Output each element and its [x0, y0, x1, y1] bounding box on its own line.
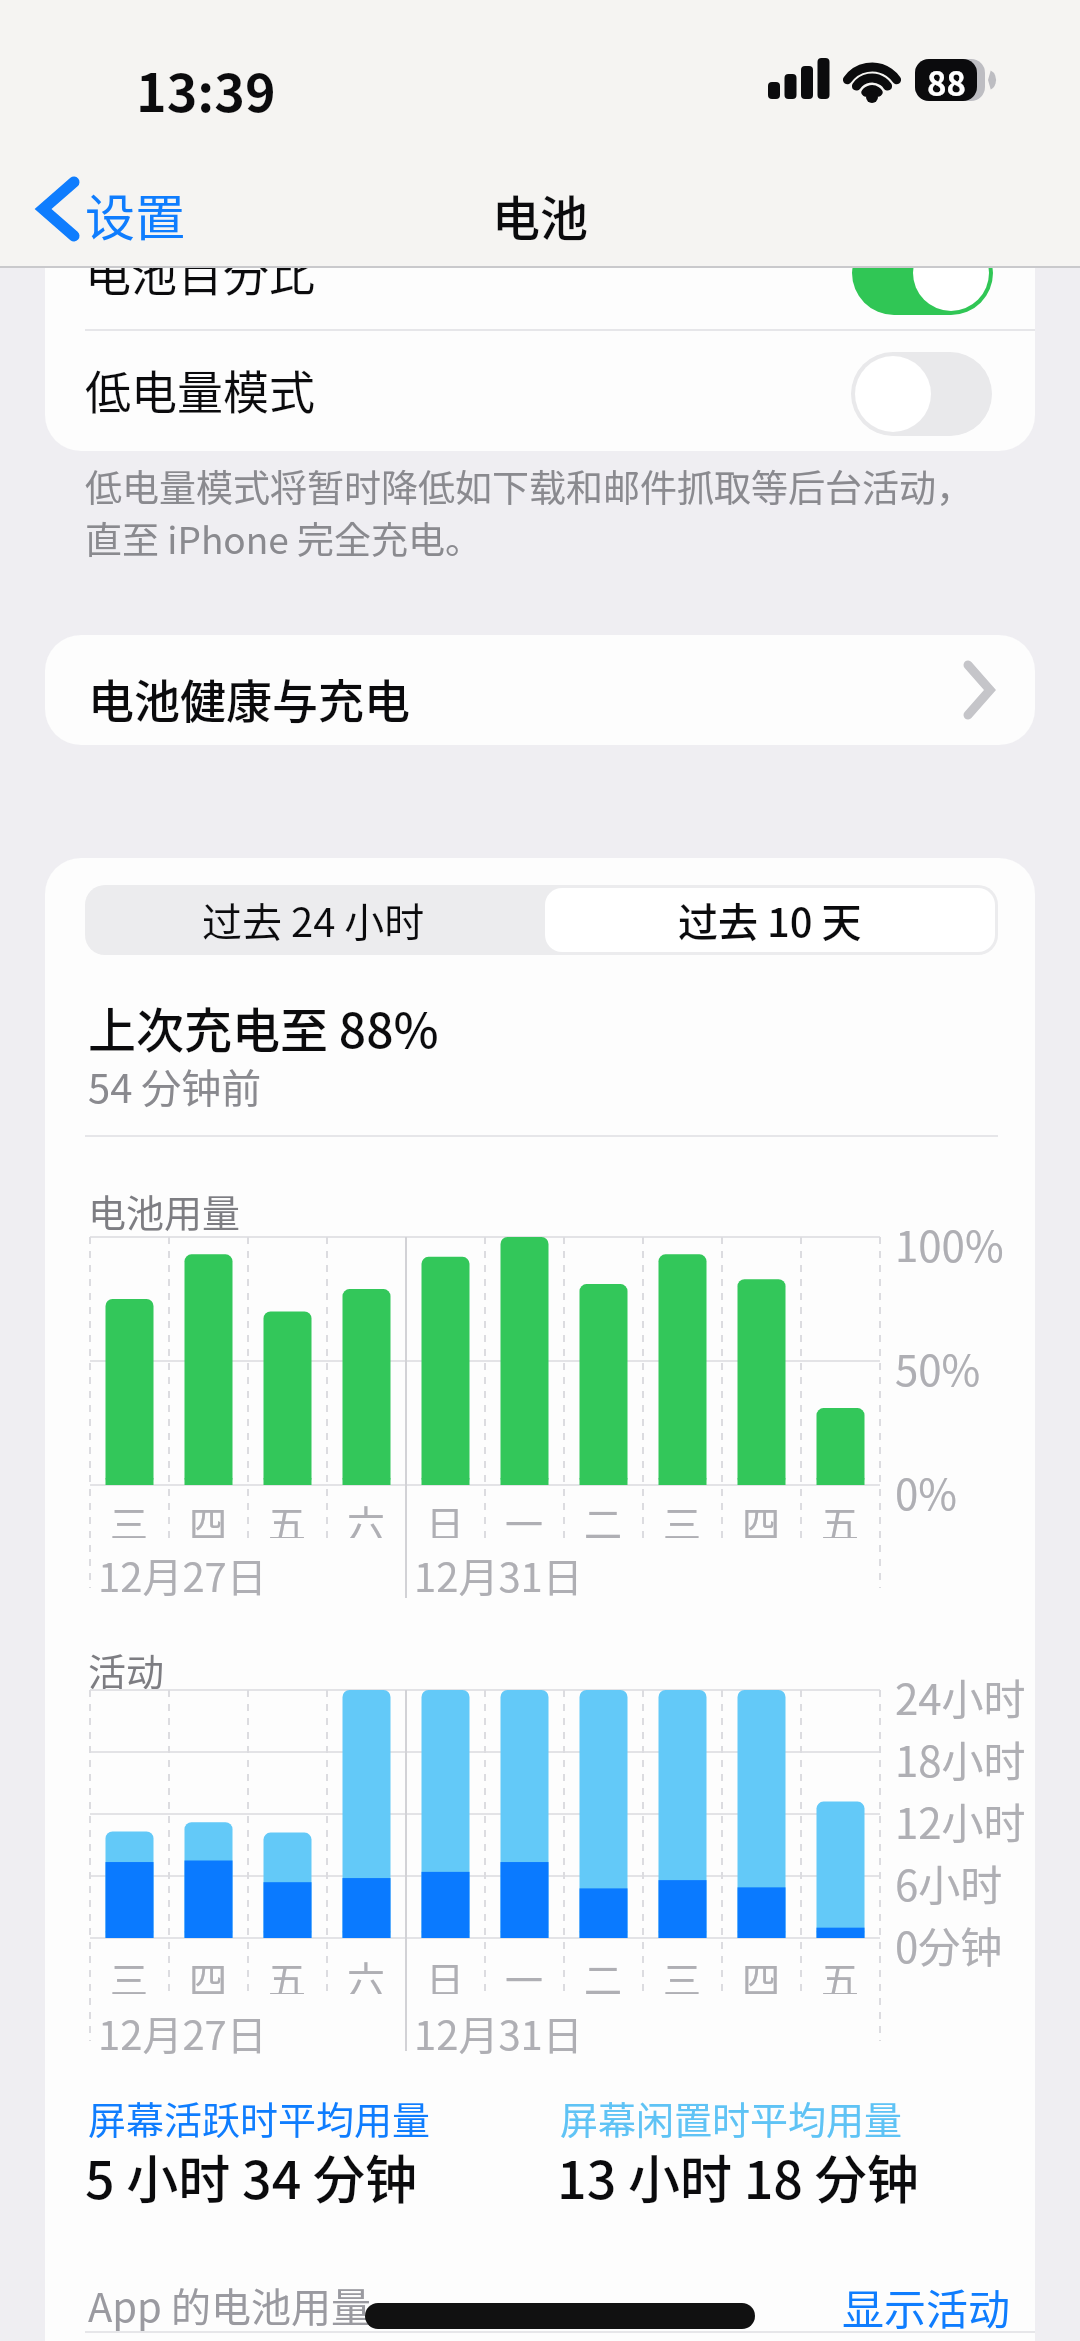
staticText: 50%	[895, 1337, 981, 1398]
staticText: 6小时	[895, 1852, 1003, 1913]
staticText: 四	[189, 1950, 228, 1994]
staticText: 四	[742, 1950, 781, 1994]
button[interactable]: App 的电池用量	[45, 2268, 1035, 2341]
staticText: 五	[821, 1494, 860, 1538]
button[interactable]	[20, 170, 220, 250]
staticText: 13 小时 18 分钟	[557, 2139, 919, 2214]
staticText: 屏幕活跃时平均用量	[88, 2090, 431, 2145]
button[interactable]	[545, 888, 995, 952]
staticText: 13:39	[136, 52, 276, 127]
staticText: 100%	[895, 1213, 1004, 1274]
staticText: 12月31日	[414, 1546, 583, 1604]
staticText: 二	[584, 1494, 623, 1538]
staticText: 24小时	[895, 1666, 1026, 1727]
staticText: 电池用量	[88, 1183, 241, 1238]
staticText: 电池百分比	[85, 238, 315, 305]
staticText: 54 分钟前	[88, 1057, 262, 1115]
staticText: 18小时	[895, 1728, 1026, 1789]
staticText: 四	[189, 1494, 228, 1538]
staticText: 六	[347, 1950, 386, 1994]
staticText: 显示活动	[842, 2276, 1011, 2337]
staticText: App 的电池用量	[88, 2276, 371, 2334]
button[interactable]	[852, 231, 993, 315]
button[interactable]: 电池健康与充电	[45, 635, 1035, 745]
staticText: 12小时	[895, 1790, 1026, 1851]
staticText: 五	[821, 1950, 860, 1994]
staticText: 日	[426, 1494, 465, 1538]
staticText: 四	[742, 1494, 781, 1538]
staticText: 一	[505, 1950, 544, 1994]
staticText: 0%	[895, 1461, 957, 1522]
staticText: 二	[584, 1950, 623, 1994]
staticText: 五	[268, 1494, 307, 1538]
staticText: 低电量模式	[85, 356, 315, 423]
staticText: 三	[663, 1494, 702, 1538]
staticText: 电池	[492, 180, 589, 250]
staticText: 屏幕闲置时平均用量	[560, 2090, 903, 2145]
staticText: 低电量模式将暂时降低如下载和邮件抓取等后台活动，	[85, 459, 973, 513]
staticText: 三	[110, 1950, 149, 1994]
staticText: 六	[347, 1494, 386, 1538]
staticText: 电池健康与充电	[88, 665, 410, 732]
staticText: 过去 10 天	[678, 891, 862, 949]
staticText: 一	[505, 1494, 544, 1538]
staticText: 三	[663, 1950, 702, 1994]
staticText: 88	[927, 58, 966, 100]
staticText: 三	[110, 1494, 149, 1538]
button[interactable]	[45, 885, 501, 955]
staticText: 12月31日	[414, 2004, 583, 2062]
staticText: 12月27日	[98, 2004, 267, 2062]
staticText: 设置	[85, 178, 185, 250]
staticText: 活动	[88, 1642, 165, 1697]
staticText: 日	[426, 1950, 465, 1994]
button[interactable]	[851, 352, 992, 436]
staticText: 过去 24 小时	[202, 891, 425, 949]
staticText: 0分钟	[895, 1914, 1003, 1975]
staticText: 12月27日	[98, 1546, 267, 1604]
staticText: 五	[268, 1950, 307, 1994]
staticText: 上次充电至 88%	[88, 992, 439, 1062]
staticText: 直至 iPhone 完全充电。	[85, 511, 483, 565]
staticText: 5 小时 34 分钟	[85, 2139, 418, 2214]
